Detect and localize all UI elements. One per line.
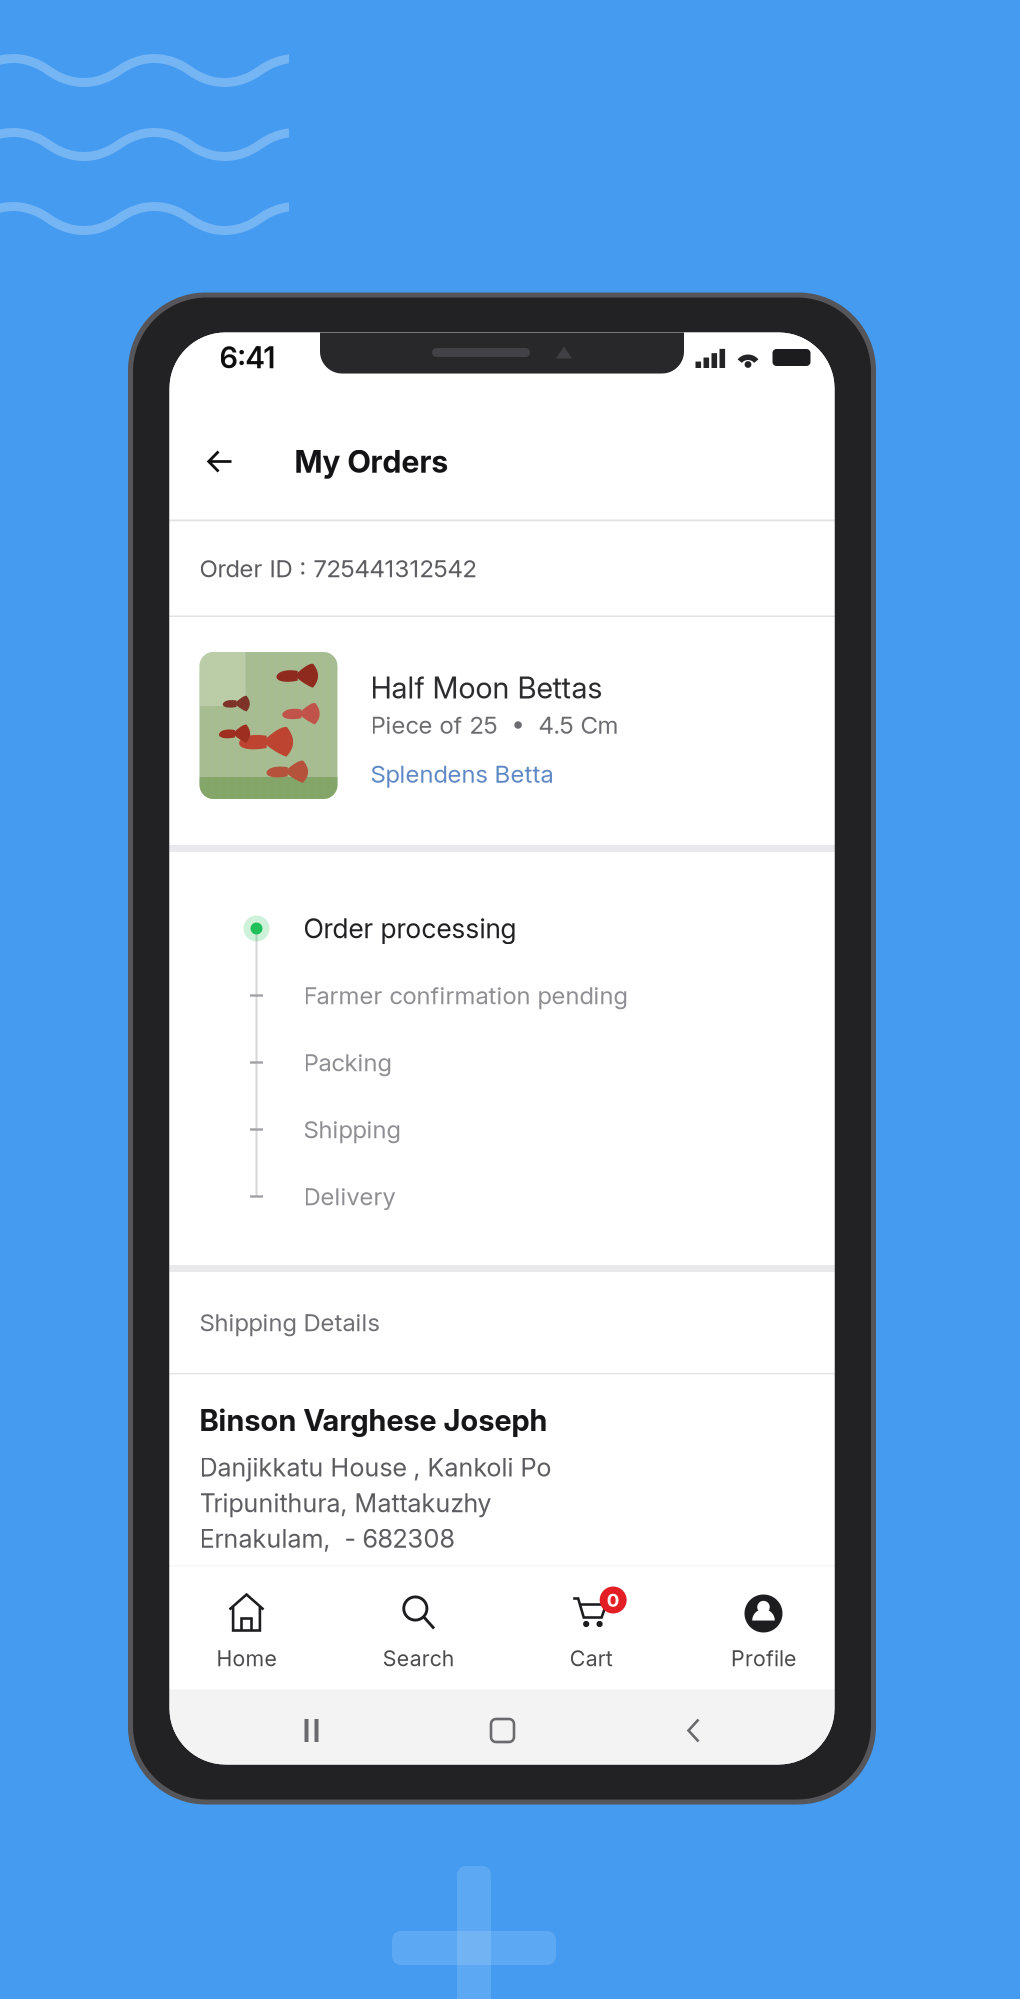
staticText: Order ID : 725441312542	[199, 554, 476, 583]
staticText: Order processing	[303, 912, 516, 945]
button[interactable]: Search	[371, 1566, 467, 1689]
staticText: Splendens Betta	[370, 759, 553, 788]
staticText: Tripunithura, Mattakuzhy	[199, 1488, 491, 1518]
staticText: Home	[216, 1646, 276, 1671]
staticText: Search	[383, 1646, 455, 1671]
button[interactable]: Cart	[543, 1566, 639, 1689]
staticText: Binson Varghese Joseph	[199, 1402, 547, 1438]
staticText: Farmer confirmation pending	[303, 981, 627, 1010]
staticText: Packing	[303, 1048, 391, 1077]
staticText: Danjikkatu House , Kankoli Po	[199, 1452, 551, 1483]
staticText: Delivery	[303, 1182, 395, 1211]
staticText: Cart	[570, 1646, 613, 1671]
staticText: Piece of 25 • 4.5 Cm	[370, 710, 618, 739]
button[interactable]: Home	[198, 1566, 294, 1689]
button[interactable]: Profile	[715, 1566, 811, 1689]
button[interactable]: Home	[476, 1701, 528, 1753]
staticText: Shipping	[303, 1115, 400, 1144]
staticText: Shipping Details	[199, 1308, 379, 1337]
staticText: 6:41	[219, 340, 275, 375]
staticText: Profile	[731, 1646, 796, 1671]
staticText: Ernakulam, - 682308	[199, 1523, 454, 1554]
button[interactable]: Splendens Betta	[370, 759, 553, 788]
staticText: 0	[607, 1589, 620, 1611]
staticText: My Orders	[294, 443, 448, 480]
staticText: Half Moon Bettas	[370, 670, 602, 705]
button[interactable]: Back	[191, 433, 247, 489]
button[interactable]: Back	[667, 1701, 719, 1753]
button[interactable]: Recent apps	[285, 1701, 337, 1753]
